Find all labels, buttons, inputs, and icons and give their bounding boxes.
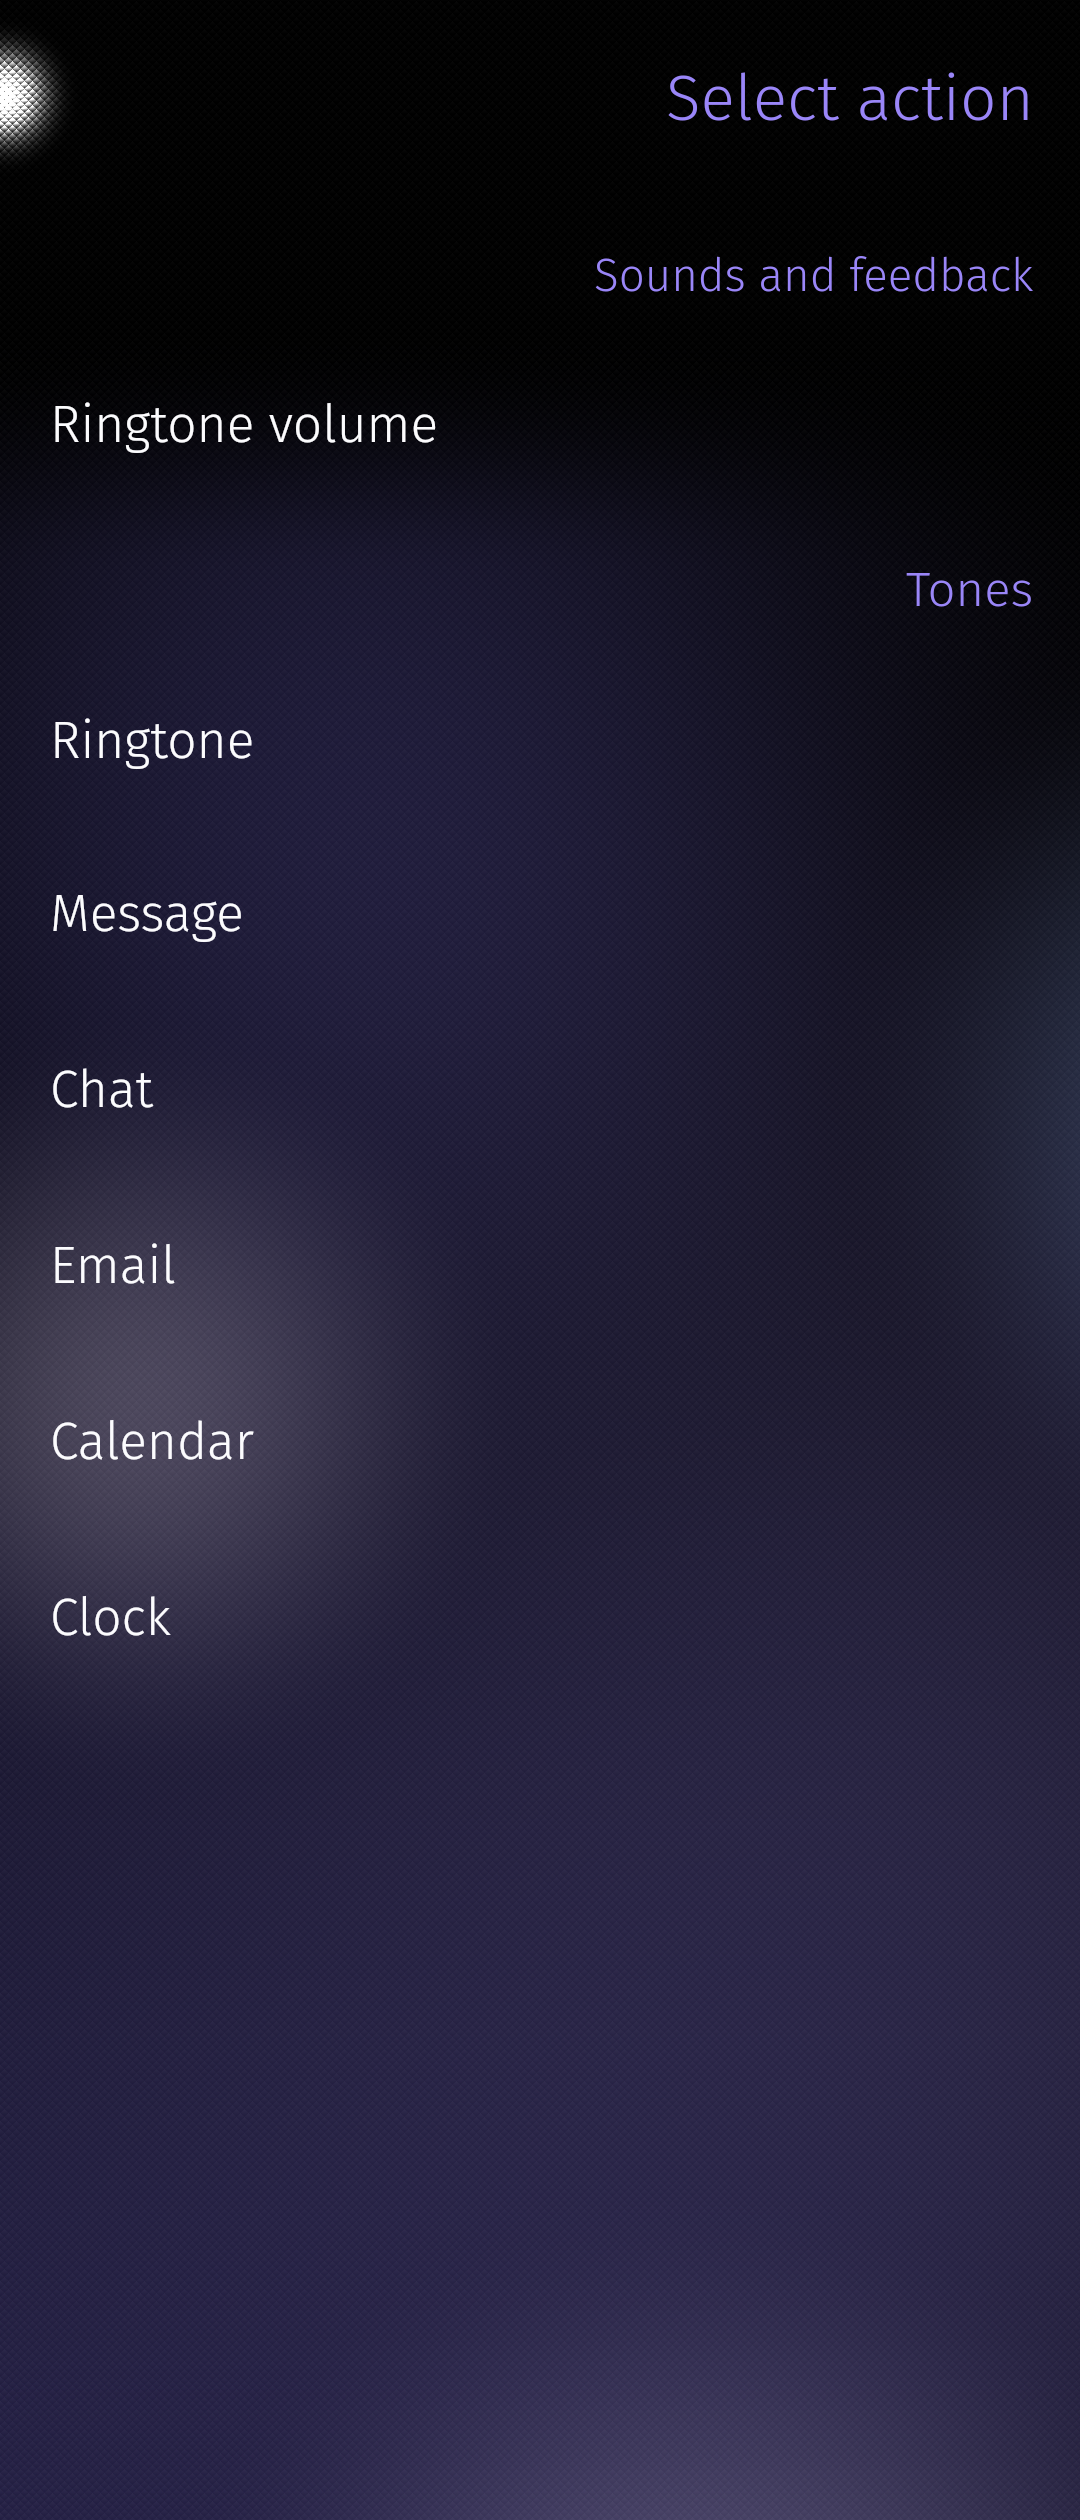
button[interactable]: Chat [0, 1035, 1080, 1145]
staticText: Tones [906, 560, 1034, 619]
staticText: Chat [50, 1059, 154, 1121]
button[interactable]: Ringtone volume [0, 370, 1080, 480]
staticText: Select action [666, 60, 1034, 137]
button[interactable]: Sounds and feedback [0, 220, 1080, 330]
button[interactable]: Message [0, 859, 1080, 969]
staticText: Calendar [50, 1411, 254, 1473]
button[interactable]: Email [0, 1211, 1080, 1321]
staticText: Ringtone [50, 710, 255, 772]
staticText: Ringtone volume [50, 394, 439, 456]
staticText: Clock [50, 1587, 171, 1649]
button[interactable]: Select action [0, 43, 1080, 153]
button[interactable]: Ringtone [0, 686, 1080, 796]
button[interactable]: Calendar [0, 1387, 1080, 1497]
button[interactable]: Tones [0, 534, 1080, 644]
staticText: Sounds and feedback [594, 248, 1034, 303]
staticText: Email [50, 1235, 176, 1297]
staticText: Message [50, 883, 244, 945]
button[interactable]: Clock [0, 1563, 1080, 1673]
